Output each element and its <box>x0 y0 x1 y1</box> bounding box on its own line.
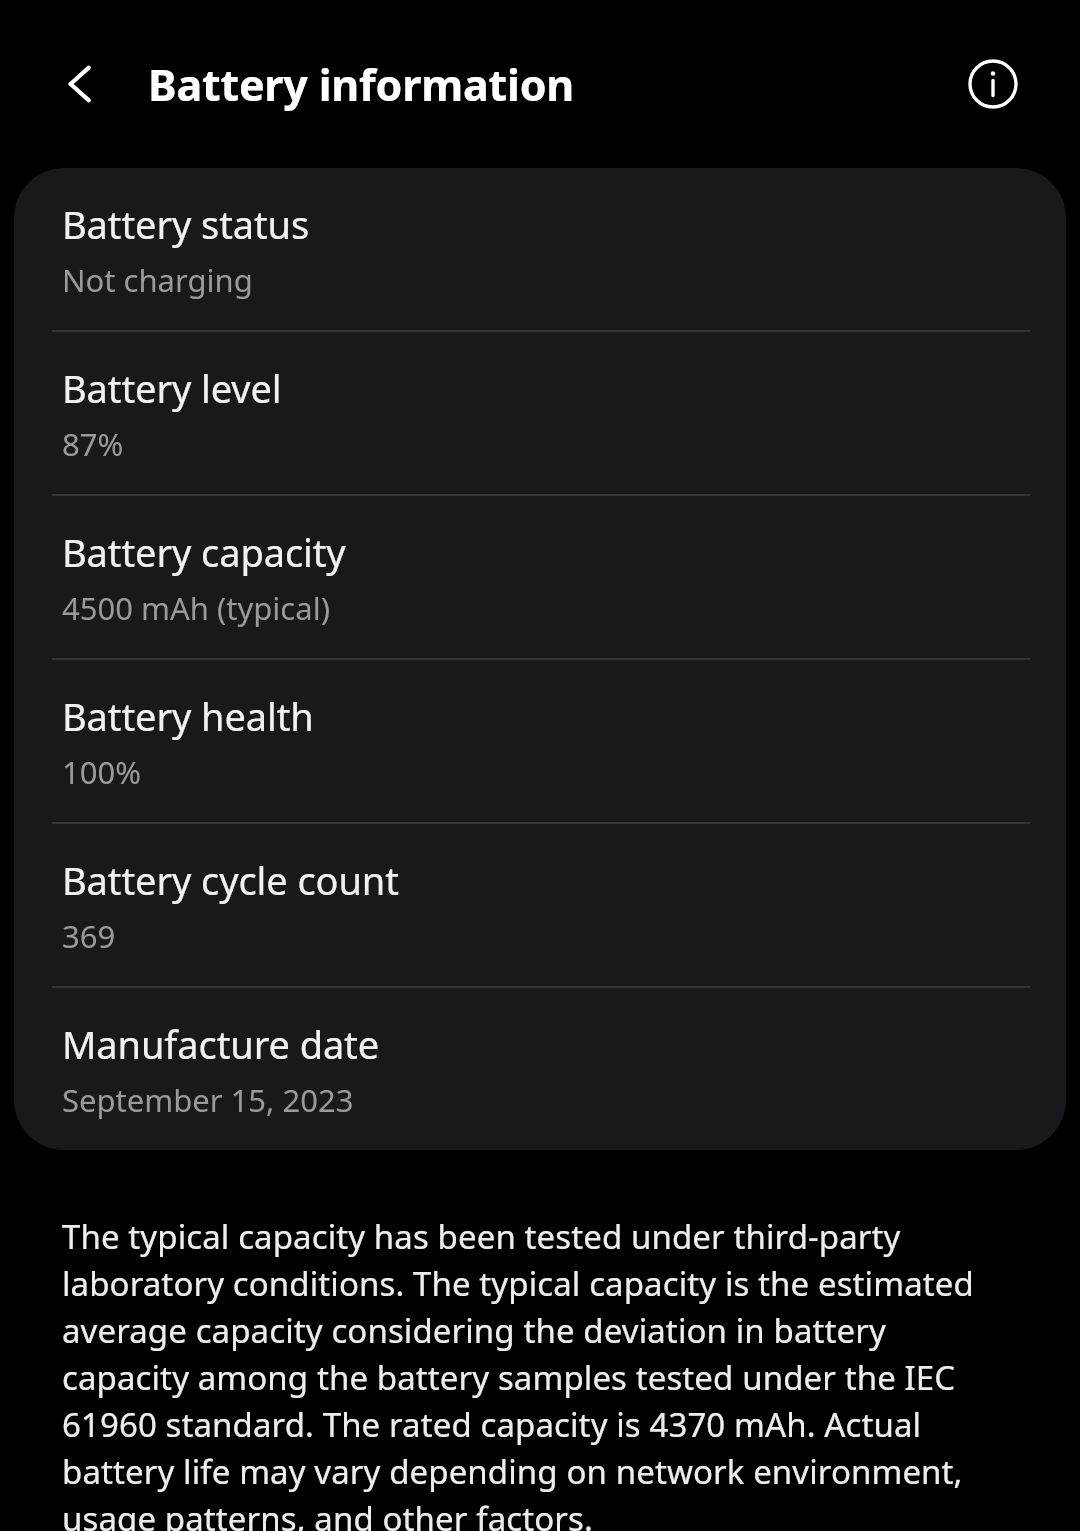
staticText: The typical capacity has been tested und… <box>62 1212 1008 1531</box>
staticText: Battery information <box>148 55 575 114</box>
staticText: Battery capacity <box>62 526 346 578</box>
staticText: Battery health <box>62 690 314 742</box>
button[interactable]: Information <box>950 41 1036 127</box>
staticText: Battery level <box>62 362 282 414</box>
button[interactable]: Battery health <box>14 660 1066 822</box>
staticText: 87% <box>62 423 124 465</box>
staticText: Battery status <box>62 198 310 250</box>
staticText: Battery cycle count <box>62 854 399 906</box>
button[interactable]: Battery level <box>14 332 1066 494</box>
staticText: Manufacture date <box>62 1018 380 1070</box>
button[interactable]: Battery status <box>14 168 1066 330</box>
staticText: Not charging <box>62 259 253 301</box>
staticText: September 15, 2023 <box>62 1079 354 1121</box>
staticText: 4500 mAh (typical) <box>62 587 330 629</box>
button[interactable]: Manufacture date <box>14 988 1066 1150</box>
staticText: 100% <box>62 751 141 793</box>
button[interactable]: Battery capacity <box>14 496 1066 658</box>
staticText: 369 <box>62 915 116 957</box>
button[interactable]: Back <box>40 40 128 128</box>
button[interactable]: Battery cycle count <box>14 824 1066 986</box>
